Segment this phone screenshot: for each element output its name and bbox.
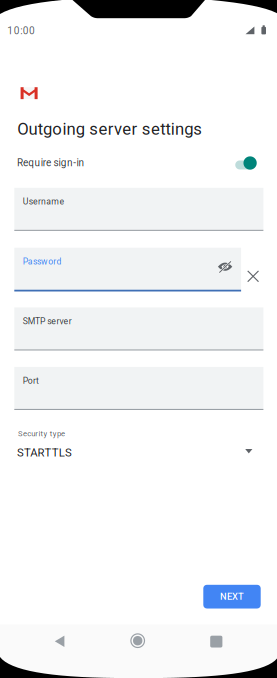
staticText: Username — [23, 196, 64, 207]
button[interactable]: NEXT — [203, 585, 261, 608]
staticText: Port — [23, 376, 39, 386]
staticText: NEXT — [220, 591, 244, 602]
button[interactable]: Recent apps — [210, 636, 222, 647]
staticText: Outgoing server settings — [17, 119, 202, 139]
button[interactable]: Require sign-in — [234, 154, 256, 172]
staticText: STARTTLS — [17, 446, 72, 459]
button[interactable]: Username — [14, 187, 263, 231]
button[interactable]: Security type — [17, 429, 266, 467]
button[interactable]: Password — [14, 247, 241, 291]
staticText: Password — [23, 256, 61, 267]
button[interactable]: Back — [55, 636, 64, 647]
button[interactable]: SMTP server — [14, 306, 263, 350]
staticText: Require sign-in — [17, 157, 85, 169]
button[interactable]: Home — [131, 634, 144, 647]
staticText: SMTP server — [23, 316, 72, 326]
button[interactable]: Port — [14, 366, 263, 410]
staticText: Security type — [18, 429, 65, 438]
button[interactable]: Show password — [217, 262, 233, 271]
staticText: 10:00 — [7, 25, 35, 37]
button[interactable]: Clear password — [247, 270, 259, 282]
